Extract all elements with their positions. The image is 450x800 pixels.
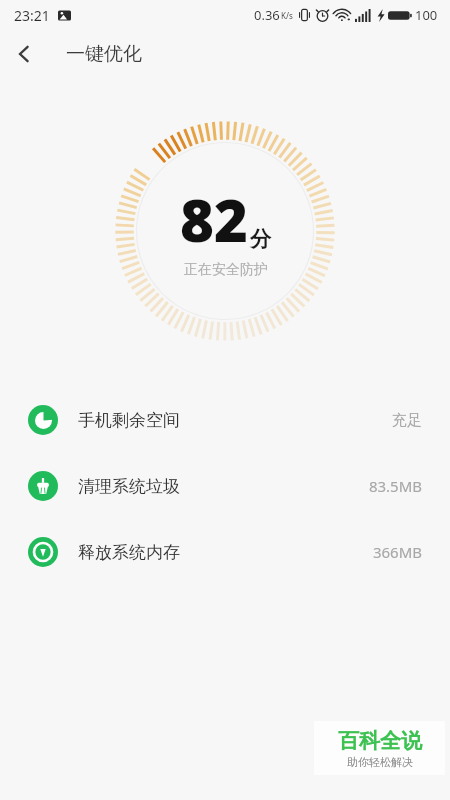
staticText: 366MB	[372, 542, 422, 562]
staticText: 分	[250, 226, 271, 252]
button[interactable]: 清理系统垃圾	[0, 453, 450, 519]
staticText: 充足	[392, 411, 422, 430]
button[interactable]: 手机剩余空间	[0, 387, 450, 453]
staticText: 释放系统内存	[78, 542, 180, 563]
staticText: 23:21	[14, 6, 50, 25]
button[interactable]: 释放系统内存	[0, 519, 450, 585]
staticText: 手机剩余空间	[78, 410, 180, 431]
staticText: 百科全说	[338, 728, 422, 754]
staticText: 83.5MB	[368, 476, 422, 496]
staticText: K/s	[281, 10, 293, 21]
staticText: 0.36	[254, 6, 280, 24]
staticText: 100	[415, 6, 438, 24]
staticText: 一键优化	[66, 42, 142, 66]
staticText: 助你轻松解决	[347, 755, 413, 769]
staticText: 82	[180, 180, 248, 259]
staticText: 清理系统垃圾	[78, 476, 180, 497]
button[interactable]: Back	[0, 30, 48, 77]
staticText: 正在安全防护	[184, 261, 268, 279]
